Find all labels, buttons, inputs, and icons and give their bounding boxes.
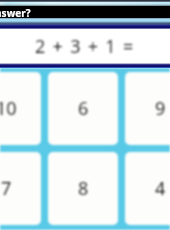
staticText: 10: [0, 96, 17, 121]
staticText: What is the answer?: [0, 6, 31, 18]
button[interactable]: 6: [48, 72, 118, 145]
staticText: 2 + 3 + 1 =: [35, 34, 135, 59]
button[interactable]: 7: [0, 152, 41, 225]
button[interactable]: 10: [0, 72, 41, 145]
staticText: 6: [78, 96, 89, 121]
staticText: 4: [155, 176, 166, 201]
button[interactable]: 4: [125, 152, 170, 225]
button[interactable]: What is the answer?: [0, 6, 170, 18]
button[interactable]: 9: [125, 72, 170, 145]
button[interactable]: 8: [48, 152, 118, 225]
staticText: 7: [1, 176, 12, 201]
staticText: 9: [155, 96, 166, 121]
staticText: 8: [78, 176, 89, 201]
